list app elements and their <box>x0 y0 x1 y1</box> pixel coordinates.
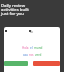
staticText: el <box>30 46 34 50</box>
button[interactable] <box>33 61 60 66</box>
staticText: ab <box>30 30 34 33</box>
button[interactable] <box>4 61 28 66</box>
staticText: Daily review activities built just for y… <box>1 3 29 17</box>
staticText: azu <box>23 53 29 57</box>
staticText: verd <box>35 53 42 57</box>
staticText: Hola <box>22 46 30 50</box>
staticText: ros <box>29 53 35 57</box>
staticText: mund <box>34 46 43 50</box>
